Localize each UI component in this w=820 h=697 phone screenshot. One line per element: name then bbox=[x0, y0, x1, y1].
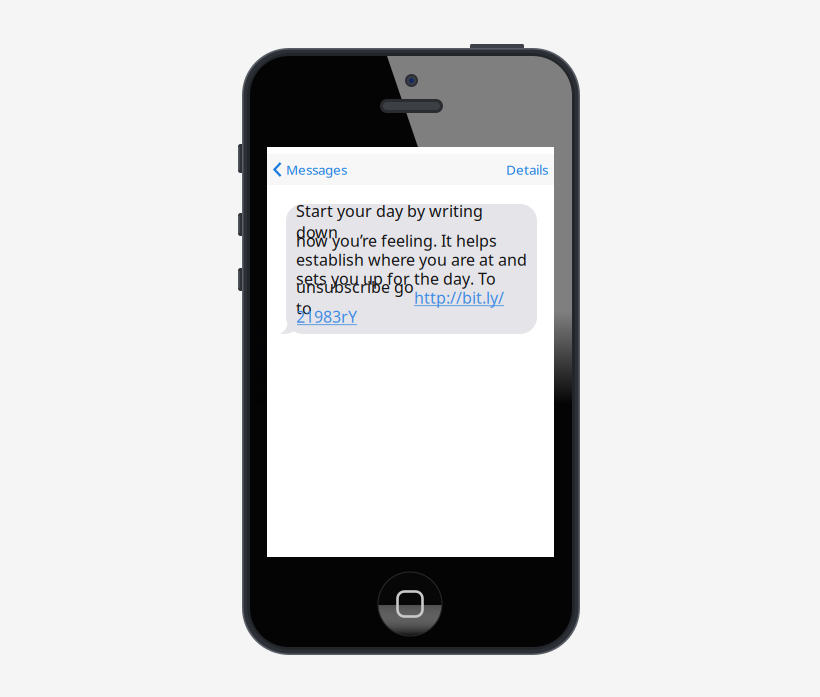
staticText: establish where you are at and bbox=[296, 249, 527, 270]
staticText: sets you up for the day. To bbox=[296, 268, 496, 289]
staticText: Start your day by writing down bbox=[296, 200, 483, 243]
button[interactable]: Messages bbox=[267, 154, 347, 185]
staticText: Messages bbox=[286, 161, 347, 178]
staticText: 21983rY bbox=[296, 306, 357, 327]
staticText: http://bit.ly/ bbox=[414, 287, 504, 308]
staticText: how you’re feeling. It helps bbox=[296, 230, 497, 251]
staticText: unsubscribe go to bbox=[296, 276, 414, 319]
button[interactable]: Details bbox=[506, 154, 554, 185]
staticText: Details bbox=[506, 161, 548, 178]
